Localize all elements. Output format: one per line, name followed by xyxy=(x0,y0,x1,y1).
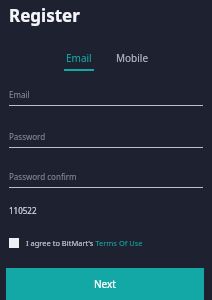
staticText: Password confirm xyxy=(9,171,77,182)
button[interactable]: I agree to BitMart's Terms Of Use xyxy=(0,237,212,249)
staticText: I agree to BitMart's Terms Of Use xyxy=(26,238,143,248)
staticText: Email xyxy=(66,51,92,65)
button[interactable]: Next xyxy=(6,268,204,300)
button[interactable]: Mobile xyxy=(113,49,152,73)
staticText: Email xyxy=(9,89,30,100)
staticText: Next xyxy=(94,277,116,291)
staticText: Register xyxy=(9,4,80,27)
staticText: 110522 xyxy=(9,205,37,216)
button[interactable]: Email xyxy=(61,49,97,73)
staticText: Mobile xyxy=(116,51,149,65)
staticText: Password xyxy=(9,131,46,142)
